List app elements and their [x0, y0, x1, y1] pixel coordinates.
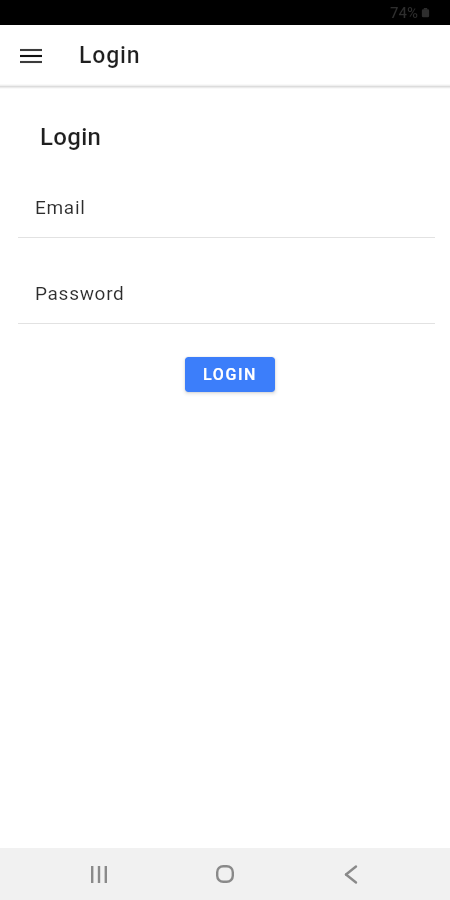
- staticText: LOGIN: [203, 365, 257, 384]
- button[interactable]: Home: [196, 848, 254, 900]
- staticText: 74%: [390, 4, 419, 22]
- staticText: Password: [35, 282, 125, 304]
- button[interactable]: Open navigation menu: [11, 36, 51, 76]
- staticText: Login: [40, 123, 102, 151]
- button[interactable]: Password: [0, 274, 450, 324]
- staticText: Login: [79, 42, 141, 69]
- staticText: Email: [35, 196, 86, 218]
- button[interactable]: Recent apps: [70, 848, 128, 900]
- button[interactable]: Email: [0, 188, 450, 238]
- button[interactable]: LOGIN: [185, 357, 275, 392]
- button[interactable]: Back: [322, 848, 380, 900]
